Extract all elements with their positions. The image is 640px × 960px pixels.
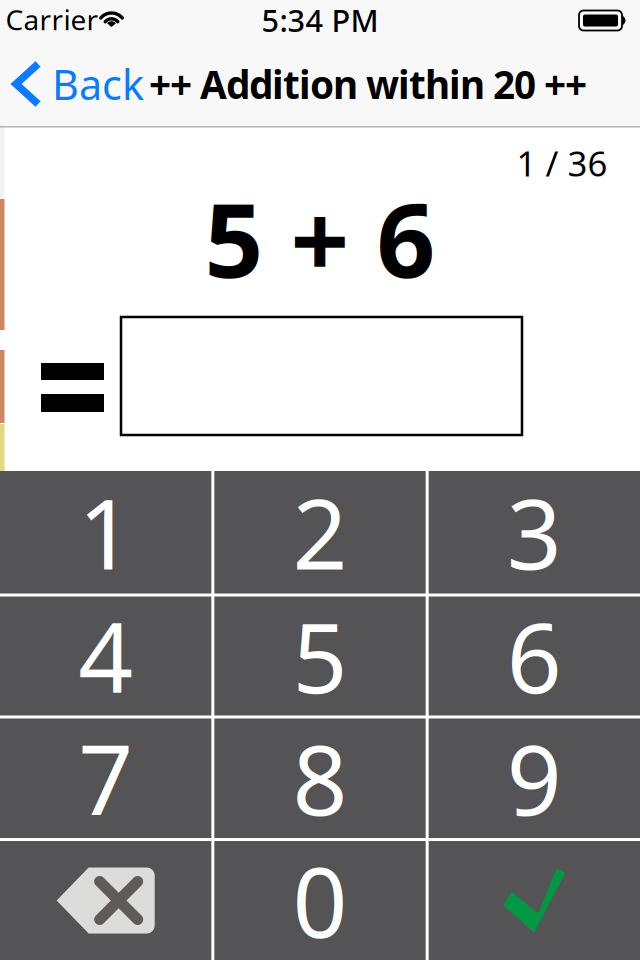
button[interactable]: Back [16, 57, 144, 111]
button[interactable]: 6 [429, 596, 640, 715]
staticText: Back [52, 57, 144, 111]
staticText: 1 [78, 468, 133, 596]
button[interactable]: Delete [0, 841, 211, 960]
staticText: 1 / 36 [516, 140, 607, 186]
staticText: 5:34 PM [261, 0, 378, 40]
staticText: 3 [507, 468, 562, 596]
button[interactable]: 1 [0, 471, 211, 593]
staticText: 9 [507, 714, 562, 842]
staticText: 5 [292, 592, 347, 720]
button[interactable]: Submit answer [429, 841, 640, 960]
button[interactable]: 8 [214, 718, 426, 838]
button[interactable]: 2 [214, 471, 426, 593]
button[interactable]: 3 [429, 471, 640, 593]
staticText: 8 [292, 714, 347, 842]
staticText: ++ Addition within 20 ++ [149, 58, 587, 110]
staticText: Carrier [5, 1, 98, 38]
staticText: 0 [292, 837, 347, 960]
button[interactable]: 5 [214, 596, 426, 715]
button[interactable]: 0 [214, 841, 426, 960]
staticText: 4 [78, 592, 133, 720]
button[interactable]: 7 [0, 718, 211, 838]
staticText: 6 [507, 592, 562, 720]
staticText: 7 [78, 714, 133, 842]
staticText: 2 [292, 468, 347, 596]
button[interactable]: 4 [0, 596, 211, 715]
button[interactable]: 9 [429, 718, 640, 838]
staticText: 5 + 6 [204, 170, 435, 306]
